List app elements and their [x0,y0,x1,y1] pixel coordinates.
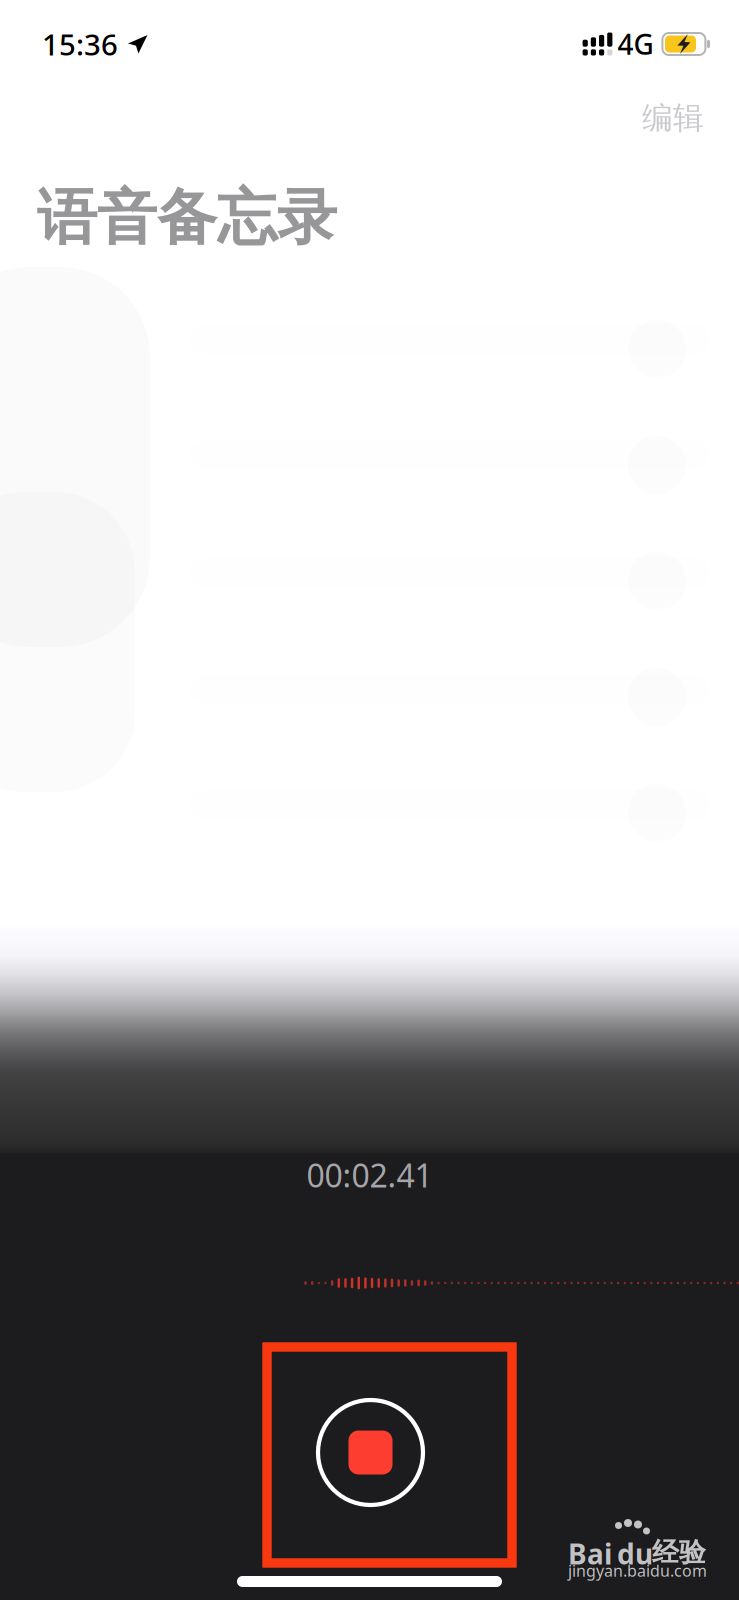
staticText: 15:36 [42,24,118,63]
button[interactable]: 编辑 [625,92,721,144]
staticText: 00:02.41 [306,1154,432,1196]
staticText: 语音备忘录 [37,181,337,255]
button[interactable]: Stop recording [304,1386,436,1518]
staticText: 4G [617,25,653,63]
staticText: 编辑 [642,99,704,137]
staticText: du [617,1535,653,1572]
staticText: 经验 [652,1536,706,1569]
staticText: Bai [568,1535,612,1572]
staticText: jingyan.baidu.com [568,1560,707,1581]
